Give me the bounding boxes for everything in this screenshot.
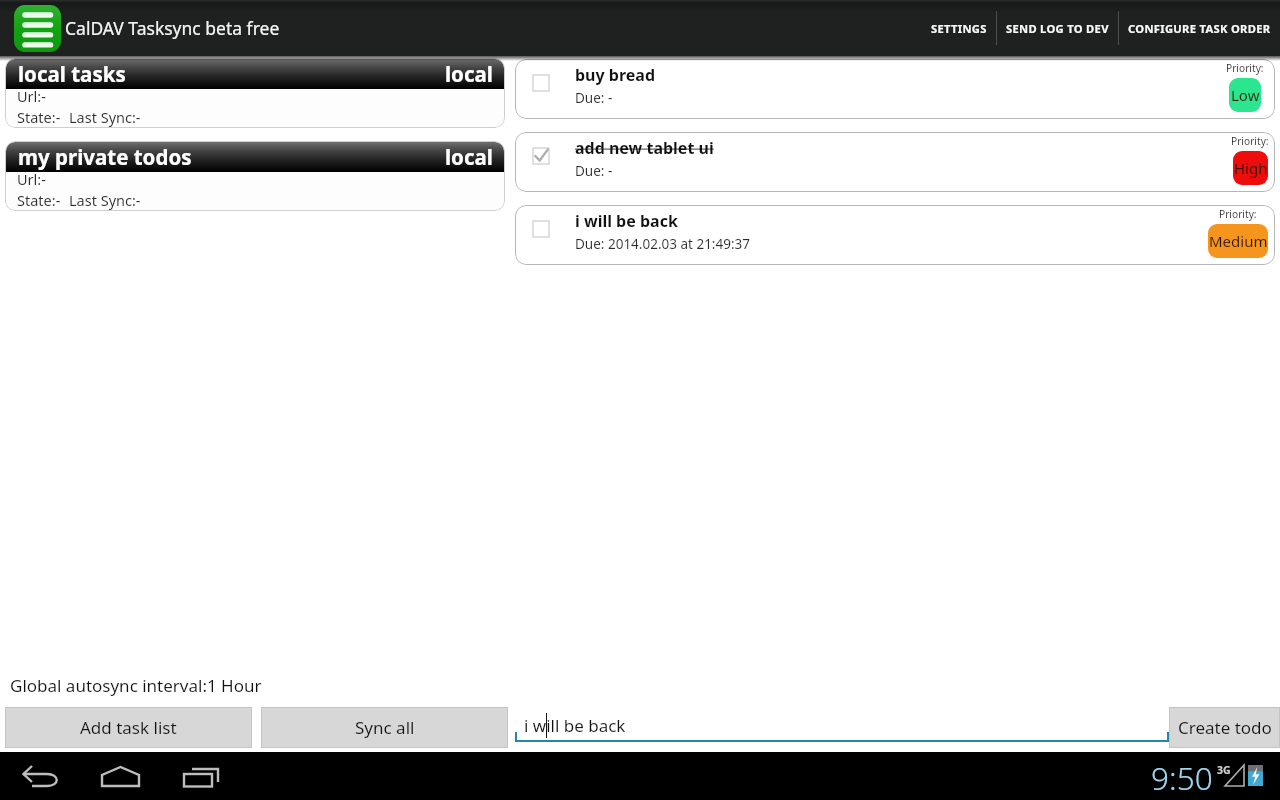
button[interactable]: CONFIGURE TASK ORDER (1119, 0, 1280, 56)
staticText: local tasks (18, 60, 126, 88)
button[interactable]: Recents (175, 752, 233, 800)
staticText: Sync all (355, 716, 415, 739)
button[interactable]: Back (12, 752, 70, 800)
staticText: buy bread (575, 64, 656, 86)
button[interactable]: Toggle done (533, 221, 549, 237)
staticText: State:- (17, 107, 61, 127)
staticText: Global autosync interval:1 Hour (10, 674, 262, 697)
staticText: SETTINGS (931, 21, 987, 36)
button[interactable]: Toggle done (515, 205, 1275, 265)
button[interactable]: Toggle done (533, 75, 549, 91)
staticText: i will be back (575, 210, 678, 232)
staticText: my private todos (18, 143, 192, 171)
button[interactable]: i will be back (515, 706, 1169, 748)
staticText: Due: 2014.02.03 at 21:49:37 (575, 235, 750, 253)
staticText: add new tablet ui (575, 137, 714, 159)
button[interactable]: SEND LOG TO DEV (997, 0, 1118, 56)
staticText: High (1234, 158, 1268, 178)
staticText: Due: - (575, 89, 613, 107)
staticText: Low (1231, 85, 1260, 105)
button[interactable]: SETTINGS (922, 0, 996, 56)
staticText: Last Sync:- (69, 190, 141, 210)
staticText: Medium (1209, 231, 1268, 251)
staticText: Priority: (1219, 207, 1257, 221)
button[interactable]: Toggle done (515, 132, 1275, 192)
staticText: SEND LOG TO DEV (1006, 21, 1109, 36)
staticText: 9:50 (1151, 756, 1213, 799)
staticText: i will be back (524, 714, 626, 737)
button[interactable]: Toggle done (515, 59, 1275, 119)
staticText: Create todo (1178, 716, 1272, 739)
staticText: State:- (17, 190, 61, 210)
button[interactable]: Home (92, 752, 150, 800)
button[interactable]: Sync all (261, 707, 508, 748)
button[interactable]: App icon (14, 5, 61, 52)
staticText: Priority: (1231, 134, 1269, 148)
staticText: CONFIGURE TASK ORDER (1128, 21, 1271, 36)
button[interactable]: my private todos (5, 141, 505, 211)
staticText: Url:- (17, 169, 46, 189)
button[interactable]: Toggle done (533, 148, 549, 164)
staticText: Due: - (575, 162, 613, 180)
staticText: local (445, 60, 493, 88)
staticText: Add task list (80, 716, 177, 739)
staticText: Url:- (17, 86, 46, 106)
button[interactable]: local tasks (5, 58, 505, 128)
staticText: CalDAV Tasksync beta free (65, 16, 280, 40)
staticText: Last Sync:- (69, 107, 141, 127)
staticText: Priority: (1226, 61, 1264, 75)
staticText: 3G (1217, 763, 1231, 777)
staticText: local (445, 143, 493, 171)
button[interactable]: Create todo (1169, 707, 1280, 748)
button[interactable]: Add task list (5, 707, 252, 748)
